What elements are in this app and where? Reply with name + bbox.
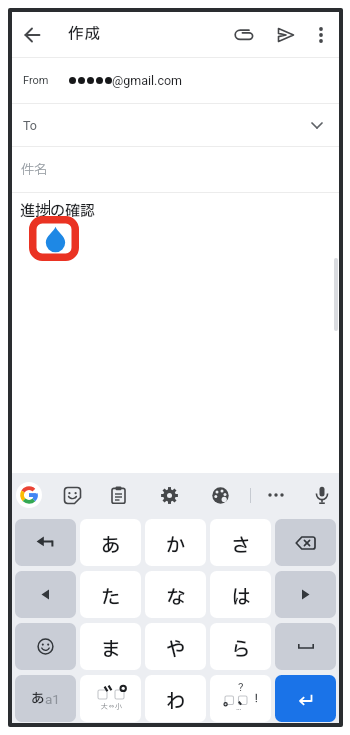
staticText: 件名: [21, 160, 48, 179]
staticText: た: [101, 583, 121, 612]
staticText: To: [23, 118, 37, 133]
staticText: a1: [45, 691, 60, 707]
staticText: ?: [238, 680, 244, 693]
staticText: @gmail.com: [112, 73, 183, 88]
staticText: か: [166, 531, 186, 560]
staticText: !: [255, 693, 258, 705]
staticText: From: [23, 74, 49, 87]
staticText: 作成: [68, 23, 102, 46]
staticText: 進捗の確認: [20, 200, 96, 222]
staticText: さ: [231, 531, 251, 560]
staticText: あ: [101, 531, 121, 560]
staticText: わ: [166, 687, 186, 716]
staticText: ら: [231, 635, 251, 664]
staticText: は: [231, 583, 251, 612]
staticText: あ: [31, 689, 45, 709]
staticText: や: [166, 635, 186, 664]
staticText: 大⇔小: [101, 702, 122, 712]
staticText: ま: [101, 635, 121, 664]
staticText: な: [166, 583, 186, 612]
staticText: …: [236, 703, 242, 712]
